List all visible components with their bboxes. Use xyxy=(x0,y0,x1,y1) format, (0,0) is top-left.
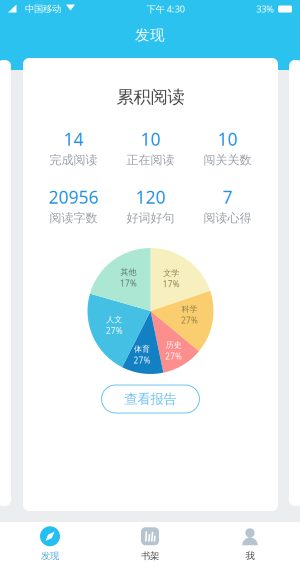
staticText: 10 xyxy=(140,127,160,150)
staticText: 查看报告 xyxy=(124,391,176,407)
button[interactable]: 发现 xyxy=(0,522,100,566)
staticText: 27% xyxy=(165,351,182,362)
staticText: 20956 xyxy=(48,185,98,208)
staticText: 27% xyxy=(106,326,123,336)
staticText: 其他 xyxy=(120,267,136,277)
button[interactable]: 我 xyxy=(200,522,300,566)
staticText: 17% xyxy=(120,278,137,289)
staticText: 中国移动 xyxy=(25,3,61,15)
staticText: 闯关关数 xyxy=(203,153,251,167)
staticText: 历史 xyxy=(166,340,182,350)
staticText: 好词好句 xyxy=(126,211,174,225)
staticText: 阅读字数 xyxy=(49,211,97,225)
staticText: 发现 xyxy=(135,26,165,44)
staticText: 7 xyxy=(222,185,232,208)
staticText: 完成阅读 xyxy=(49,153,97,167)
staticText: 体育 xyxy=(134,344,150,354)
staticText: 科学 xyxy=(181,304,197,314)
staticText: 阅读心得 xyxy=(203,211,251,225)
staticText: 27% xyxy=(133,355,150,366)
button[interactable]: 查看报告 xyxy=(101,385,199,413)
staticText: 累积阅读 xyxy=(116,86,184,108)
button[interactable]: 书架 xyxy=(100,522,200,566)
staticText: 17% xyxy=(163,279,180,289)
staticText: 33% xyxy=(256,3,274,15)
staticText: 我 xyxy=(245,550,254,562)
staticText: 10 xyxy=(217,127,237,150)
staticText: 14 xyxy=(63,127,83,150)
staticText: 人文 xyxy=(106,315,122,325)
staticText: 文学 xyxy=(163,268,179,278)
staticText: 27% xyxy=(181,315,198,326)
staticText: 书架 xyxy=(141,550,159,562)
staticText: 120 xyxy=(135,185,165,208)
staticText: 下午 4:30 xyxy=(146,3,184,15)
staticText: 发现 xyxy=(41,550,59,562)
staticText: 正在阅读 xyxy=(126,153,174,167)
